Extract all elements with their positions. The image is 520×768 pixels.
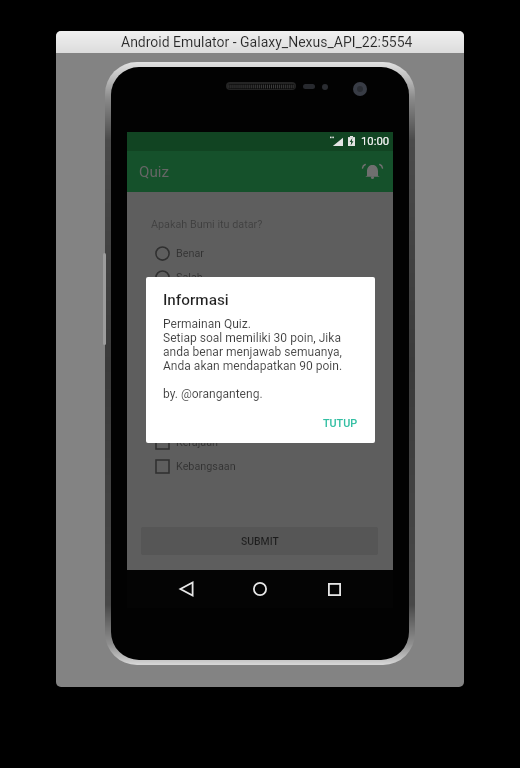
button[interactable]: Habibie xyxy=(127,394,393,415)
staticText: Quiz xyxy=(139,163,170,181)
staticText: Salah xyxy=(176,271,203,284)
button[interactable]: Soeharto xyxy=(127,370,393,391)
button[interactable]: Home xyxy=(236,570,284,608)
staticText: Mungkin xyxy=(176,294,218,307)
staticText: Apakah Bumi itu datar? xyxy=(151,218,263,231)
staticText: Habibie xyxy=(176,398,213,411)
button[interactable]: Kebangsaan xyxy=(127,456,393,477)
staticText: Permainan Quiz. Setiap soal memiliki 30 … xyxy=(163,317,343,401)
staticText: Soekarno xyxy=(176,350,222,363)
button[interactable]: Mungkin xyxy=(127,290,393,311)
staticText: Kebangsaan xyxy=(176,460,236,473)
button[interactable]: Soekarno xyxy=(127,346,393,367)
button[interactable]: Benar xyxy=(127,243,393,264)
button[interactable]: Kerajaan xyxy=(127,432,393,453)
button[interactable]: Back xyxy=(162,570,210,608)
staticText: TUTUP xyxy=(323,417,358,430)
staticText: Siapa presiden pertama RI? xyxy=(151,321,283,334)
button[interactable]: Notifications xyxy=(354,154,390,190)
staticText: Android Emulator - Galaxy_Nexus_API_22:5… xyxy=(121,34,413,50)
staticText: Benar xyxy=(176,247,204,260)
staticText: SUBMIT xyxy=(241,535,279,547)
button[interactable]: TUTUP xyxy=(316,410,364,436)
staticText: Kerajaan xyxy=(176,436,218,449)
button[interactable]: Salah xyxy=(127,267,393,288)
staticText: Informasi xyxy=(163,291,229,309)
button[interactable]: SUBMIT xyxy=(141,527,378,555)
staticText: 10:00 xyxy=(361,135,390,148)
button[interactable]: Recents xyxy=(310,570,358,608)
